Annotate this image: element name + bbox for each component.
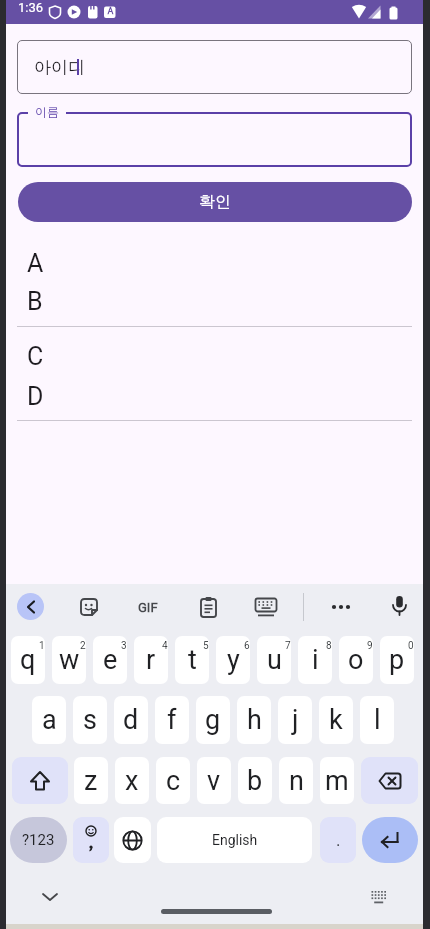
button[interactable]: k bbox=[319, 696, 353, 744]
button[interactable]: n bbox=[279, 757, 313, 804]
button[interactable]: l bbox=[360, 696, 394, 744]
button[interactable]: C bbox=[17, 337, 412, 375]
button[interactable]: m bbox=[320, 757, 354, 804]
button[interactable] bbox=[17, 112, 412, 167]
staticText: 5 bbox=[203, 640, 209, 652]
staticText: A bbox=[27, 249, 44, 278]
button[interactable] bbox=[114, 817, 151, 863]
button[interactable]: x bbox=[115, 757, 149, 804]
button[interactable]: w bbox=[52, 636, 86, 684]
staticText: 확인 bbox=[199, 192, 231, 212]
staticText: s bbox=[83, 704, 97, 736]
button[interactable]: t bbox=[175, 636, 209, 684]
button[interactable]: g bbox=[196, 696, 230, 744]
button[interactable] bbox=[17, 593, 44, 620]
button[interactable] bbox=[255, 598, 277, 618]
staticText: 7 bbox=[285, 640, 291, 652]
button[interactable] bbox=[200, 596, 217, 618]
staticText: a bbox=[42, 704, 57, 736]
staticText: n bbox=[289, 765, 304, 797]
button[interactable]: . bbox=[320, 817, 356, 863]
button[interactable]: a bbox=[32, 696, 66, 744]
button[interactable]: A bbox=[17, 244, 412, 282]
button[interactable]: c bbox=[156, 757, 190, 804]
staticText: x bbox=[125, 765, 139, 797]
staticText: c bbox=[166, 765, 181, 797]
button[interactable]: f bbox=[155, 696, 189, 744]
button[interactable]: e bbox=[93, 636, 127, 684]
button[interactable]: GIF bbox=[134, 597, 162, 617]
staticText: 1 bbox=[39, 640, 45, 652]
staticText: l bbox=[374, 704, 381, 736]
staticText: d bbox=[123, 704, 139, 736]
staticText: i bbox=[312, 644, 319, 676]
staticText: 6 bbox=[244, 640, 250, 652]
staticText: 3 bbox=[121, 640, 127, 652]
button[interactable]: 확인 bbox=[18, 182, 412, 222]
staticText: f bbox=[167, 704, 177, 736]
staticText: 8 bbox=[326, 640, 332, 652]
staticText: . bbox=[336, 830, 341, 850]
button[interactable]: 아이디 bbox=[17, 40, 412, 94]
button[interactable]: p bbox=[380, 636, 414, 684]
staticText: q bbox=[20, 644, 36, 676]
staticText: A bbox=[104, 6, 117, 30]
staticText: h bbox=[247, 704, 262, 736]
button[interactable] bbox=[331, 602, 351, 612]
staticText: 2 bbox=[80, 640, 86, 652]
button[interactable]: q bbox=[11, 636, 45, 684]
staticText: u bbox=[267, 644, 282, 676]
staticText: 이름 bbox=[35, 104, 59, 119]
button[interactable] bbox=[73, 817, 109, 863]
staticText: 아이디 bbox=[34, 57, 85, 78]
staticText: C bbox=[27, 342, 44, 371]
button[interactable]: i bbox=[298, 636, 332, 684]
button[interactable]: d bbox=[114, 696, 148, 744]
button[interactable]: ?123 bbox=[10, 817, 67, 863]
staticText: 9 bbox=[367, 640, 373, 652]
staticText: w bbox=[59, 644, 80, 676]
button[interactable]: v bbox=[197, 757, 231, 804]
staticText: p bbox=[389, 644, 405, 676]
button[interactable]: English bbox=[157, 817, 312, 863]
button[interactable]: y bbox=[216, 636, 250, 684]
staticText: j bbox=[292, 704, 299, 736]
button[interactable] bbox=[12, 757, 68, 804]
button[interactable]: B bbox=[17, 282, 412, 320]
staticText: D bbox=[27, 382, 44, 411]
staticText: B bbox=[27, 287, 43, 316]
staticText: g bbox=[205, 704, 221, 736]
button[interactable]: D bbox=[17, 377, 412, 415]
staticText: 0 bbox=[408, 640, 414, 652]
staticText: GIF bbox=[138, 600, 158, 615]
button[interactable] bbox=[362, 817, 418, 863]
staticText: e bbox=[103, 644, 118, 676]
button[interactable]: j bbox=[278, 696, 312, 744]
staticText: z bbox=[84, 765, 98, 797]
staticText: English bbox=[212, 832, 258, 848]
button[interactable]: z bbox=[74, 757, 108, 804]
staticText: r bbox=[146, 644, 156, 676]
staticText: y bbox=[227, 644, 240, 676]
button[interactable] bbox=[391, 595, 408, 619]
staticText: k bbox=[329, 704, 343, 736]
button[interactable]: r bbox=[134, 636, 168, 684]
staticText: t bbox=[188, 644, 197, 676]
staticText: b bbox=[247, 765, 263, 797]
button[interactable]: h bbox=[237, 696, 271, 744]
button[interactable] bbox=[79, 597, 99, 617]
staticText: o bbox=[348, 644, 364, 676]
staticText: 1:36 bbox=[18, 0, 58, 24]
staticText: v bbox=[207, 765, 221, 797]
staticText: m bbox=[325, 765, 349, 797]
staticText: 4 bbox=[162, 640, 168, 652]
staticText: ?123 bbox=[22, 831, 55, 849]
button[interactable]: u bbox=[257, 636, 291, 684]
button[interactable]: s bbox=[73, 696, 107, 744]
button[interactable] bbox=[361, 757, 418, 804]
button[interactable]: b bbox=[238, 757, 272, 804]
button[interactable]: o bbox=[339, 636, 373, 684]
